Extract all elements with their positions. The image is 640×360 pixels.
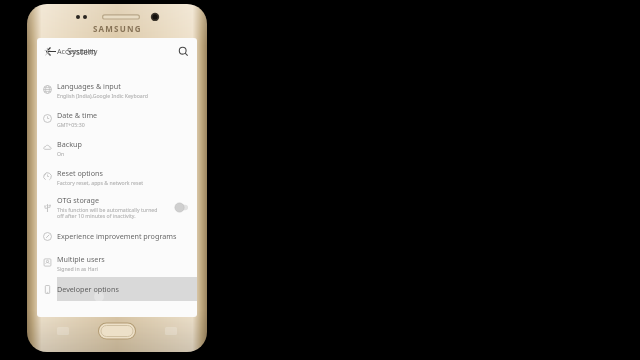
staticText: Multiple users bbox=[57, 254, 105, 264]
staticText: Backup bbox=[57, 139, 82, 149]
staticText: SAMSUNG bbox=[93, 23, 142, 34]
button[interactable]: OTG storage toggle bbox=[174, 202, 190, 213]
staticText: On bbox=[57, 150, 65, 157]
button[interactable]: Date & time bbox=[37, 104, 197, 133]
staticText: GMT+05:30 bbox=[57, 121, 85, 128]
button[interactable]: Languages & input bbox=[37, 75, 197, 104]
staticText: OTG storage bbox=[57, 195, 100, 205]
staticText: English (India),Google Indic Keyboard bbox=[57, 92, 148, 99]
button[interactable]: Backup bbox=[37, 133, 197, 162]
button[interactable]: Search bbox=[170, 38, 197, 65]
button[interactable]: OTG storage bbox=[37, 191, 197, 224]
button[interactable]: Developer options bbox=[37, 277, 197, 301]
staticText: Developer options bbox=[57, 284, 119, 294]
button[interactable]: Navigate up bbox=[37, 38, 64, 65]
button[interactable]: Reset options bbox=[37, 162, 197, 191]
staticText: Languages & input bbox=[57, 81, 121, 91]
staticText: System bbox=[67, 46, 96, 58]
staticText: Experience improvement programs bbox=[57, 231, 177, 241]
staticText: Date & time bbox=[57, 110, 98, 120]
staticText: Signed in as Hari bbox=[57, 265, 98, 272]
staticText: Reset options bbox=[57, 168, 103, 178]
staticText: Accessibility bbox=[57, 46, 98, 56]
button[interactable]: Multiple users bbox=[37, 248, 197, 277]
staticText: Factory reset, apps & network reset bbox=[57, 179, 144, 186]
staticText: This function will be automatically turn… bbox=[57, 206, 158, 220]
button[interactable]: Experience improvement programs bbox=[37, 224, 197, 248]
